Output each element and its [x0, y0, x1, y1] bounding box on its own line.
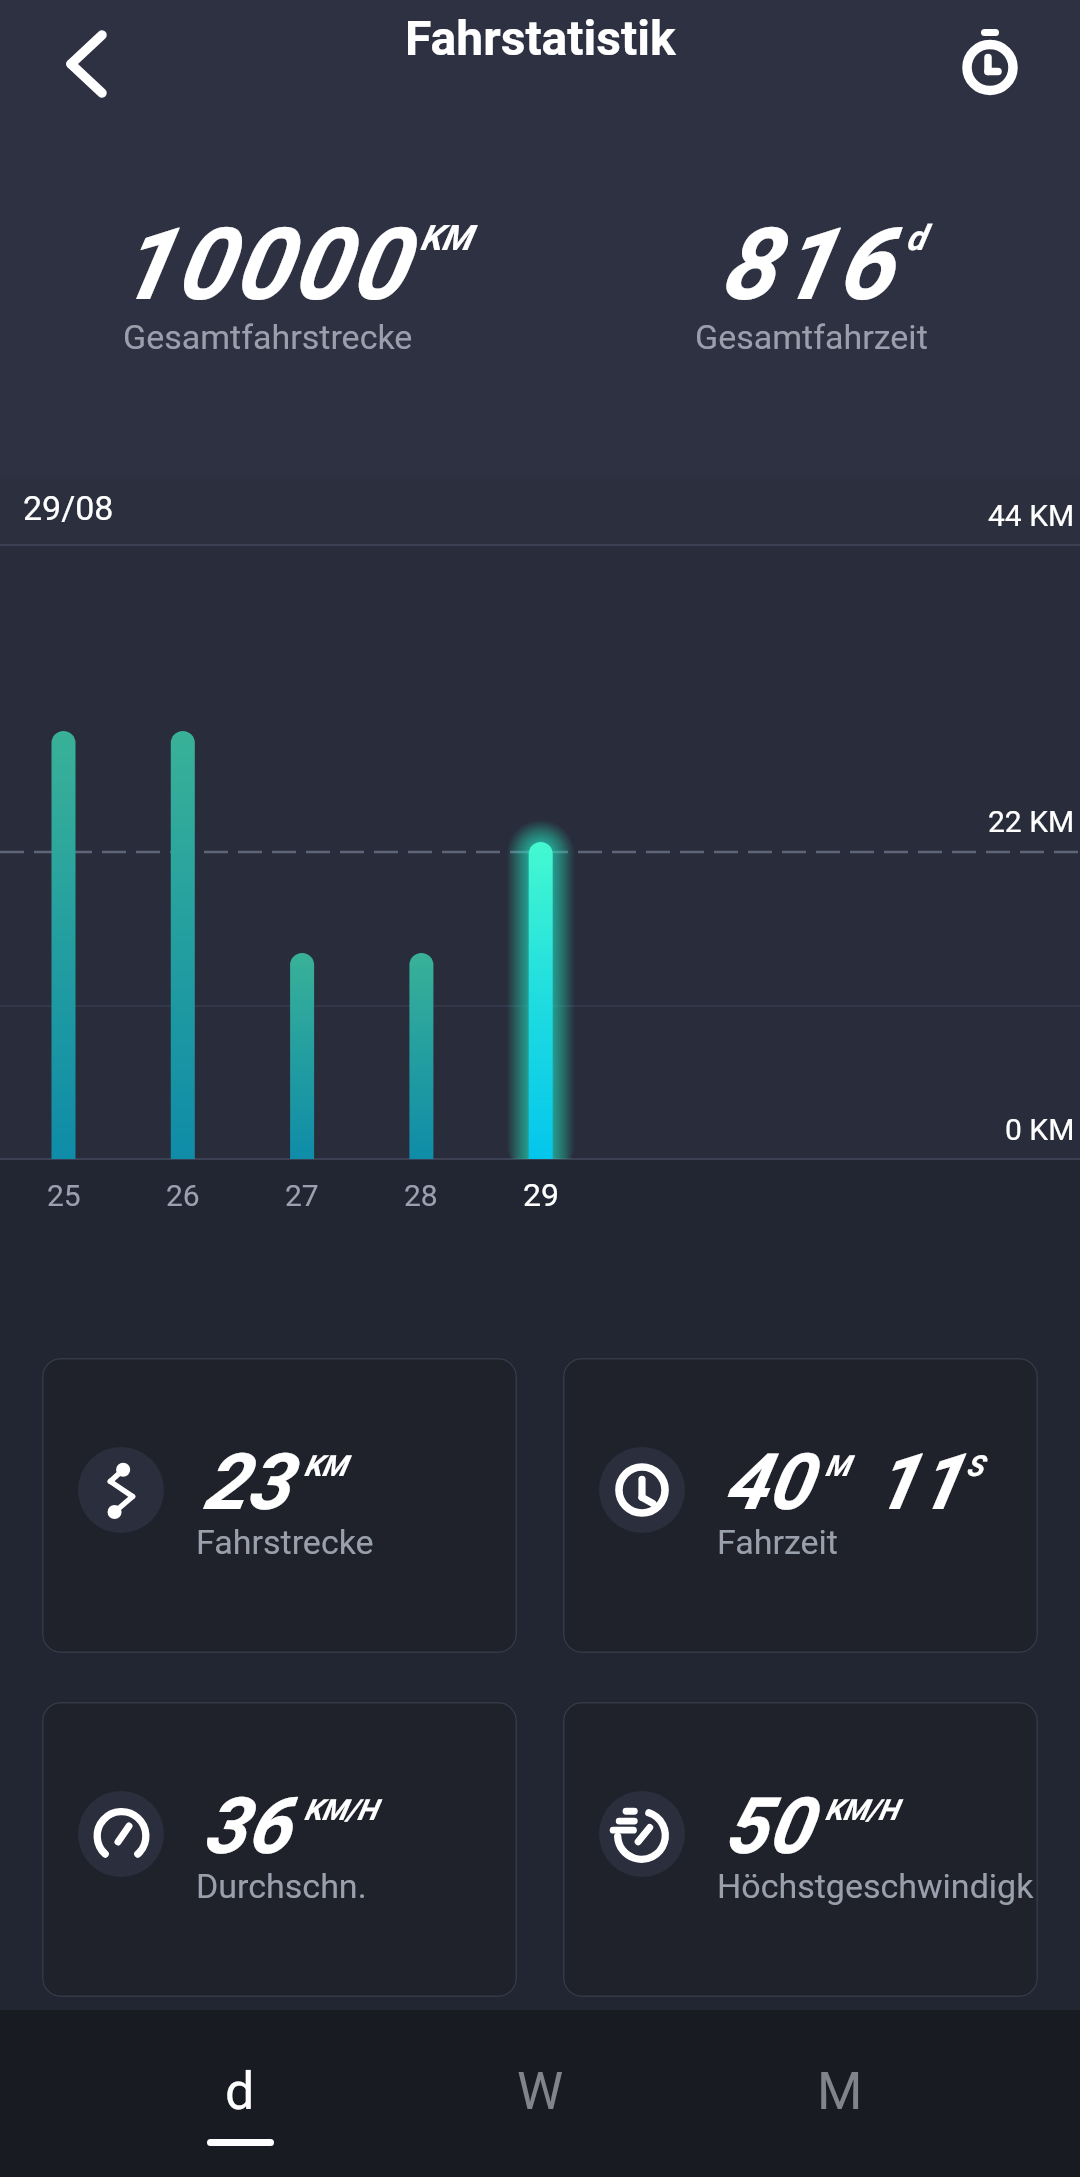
staticText: 36 [203, 1781, 290, 1872]
staticText: 0 KM [1005, 1112, 1075, 1147]
staticText: M [817, 2061, 863, 2122]
button[interactable]: Back [26, 18, 118, 110]
staticText: Fahrstrecke [196, 1522, 374, 1562]
staticText: KM [420, 218, 472, 259]
button[interactable]: 50 [563, 1702, 1038, 1997]
staticText: KM [304, 1449, 347, 1483]
staticText: S [966, 1449, 984, 1483]
staticText: KM/H [304, 1793, 377, 1827]
button[interactable]: 23 [42, 1358, 517, 1653]
button[interactable]: d [90, 2010, 390, 2177]
staticText: d [225, 2061, 255, 2122]
staticText: 40 [724, 1437, 811, 1528]
staticText: Gesamtfahrstrecke [123, 317, 413, 357]
staticText: Durchschn. [196, 1866, 367, 1906]
staticText: Fahrzeit [717, 1522, 838, 1562]
staticText: 22 KM [988, 804, 1075, 839]
button[interactable]: 40 [563, 1358, 1038, 1653]
staticText: 11 [874, 1437, 961, 1528]
staticText: 26 [166, 1178, 200, 1213]
button[interactable]: Stopwatch [942, 18, 1038, 112]
staticText: 27 [285, 1178, 319, 1213]
staticText: 23 [203, 1437, 290, 1528]
staticText: 816 [720, 206, 895, 323]
staticText: d [906, 218, 926, 259]
staticText: Höchstgeschwindigk [717, 1866, 1034, 1906]
staticText: 25 [47, 1178, 81, 1213]
staticText: 50 [724, 1781, 811, 1872]
staticText: M [825, 1449, 850, 1483]
staticText: W [517, 2061, 564, 2122]
button[interactable]: M [690, 2010, 990, 2177]
staticText: 29/08 [23, 488, 114, 528]
staticText: KM/H [825, 1793, 898, 1827]
staticText: 29 [523, 1176, 559, 1214]
staticText: Gesamtfahrzeit [695, 317, 928, 357]
staticText: 44 KM [988, 498, 1075, 533]
button[interactable]: 36 [42, 1702, 517, 1997]
staticText: Fahrstatistik [405, 10, 676, 66]
staticText: 28 [404, 1178, 438, 1213]
staticText: 10000 [117, 206, 409, 323]
button[interactable]: W [390, 2010, 690, 2177]
